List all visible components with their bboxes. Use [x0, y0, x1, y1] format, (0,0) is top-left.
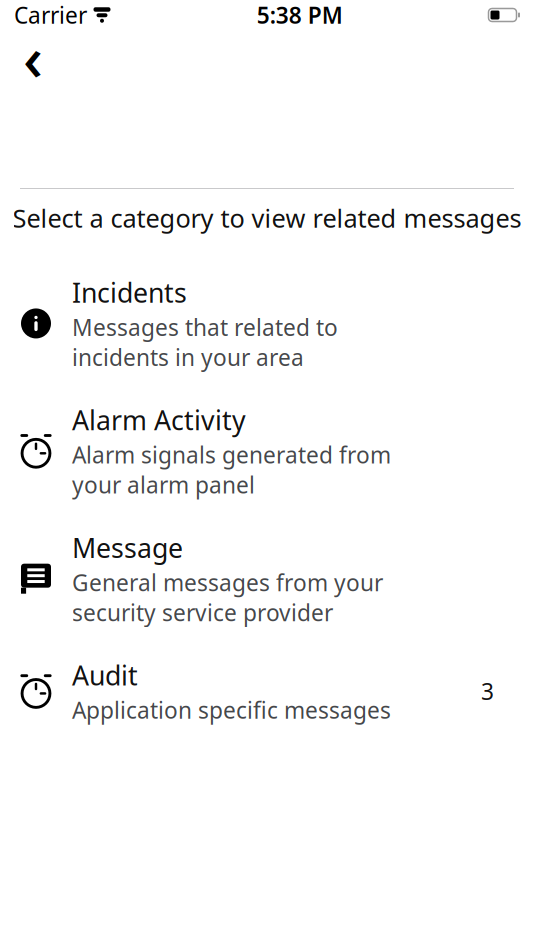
- button[interactable]: Audit: [0, 649, 534, 733]
- staticText: 5:38 PM: [257, 0, 343, 30]
- button[interactable]: Incidents: [0, 267, 534, 380]
- staticText: 3: [481, 676, 494, 706]
- staticText: Carrier: [14, 0, 87, 30]
- staticText: ‹: [23, 16, 43, 98]
- button[interactable]: Alarm Activity: [0, 394, 534, 508]
- staticText: Alarm signals generated from your alarm …: [72, 440, 391, 500]
- staticText: Incidents: [72, 275, 187, 310]
- staticText: Message: [72, 530, 183, 565]
- staticText: Application specific messages: [72, 695, 391, 725]
- staticText: Messages that related to incidents in yo…: [72, 312, 338, 372]
- staticText: Select a category to view related messag…: [12, 201, 521, 235]
- staticText: General messages from your security serv…: [72, 567, 383, 627]
- button[interactable]: Message: [0, 522, 534, 635]
- staticText: Audit: [72, 657, 138, 693]
- button[interactable]: Back: [0, 34, 48, 80]
- staticText: Alarm Activity: [72, 402, 246, 438]
